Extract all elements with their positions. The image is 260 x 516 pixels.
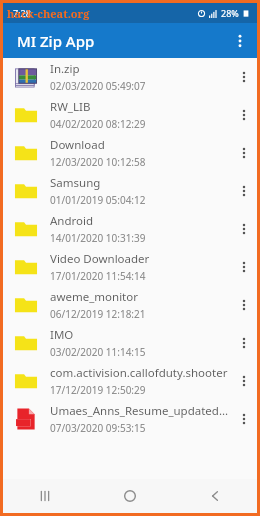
staticText: 03/02/2020 11:14:15: [50, 345, 146, 359]
staticText: 04/02/2020 08:12:29: [50, 117, 146, 131]
button[interactable]: IMO: [3, 324, 257, 362]
staticText: 12/03/2020 10:12:58: [50, 155, 146, 169]
button[interactable]: Item options: [231, 248, 257, 286]
button[interactable]: RW_LIB: [3, 96, 257, 134]
button[interactable]: aweme_monitor: [3, 286, 257, 324]
staticText: In.zip: [50, 61, 80, 77]
button[interactable]: Item options: [231, 134, 257, 172]
button[interactable]: Download: [3, 134, 257, 172]
button[interactable]: Umaes_Anns_Resume_updated.pdf: [3, 400, 257, 438]
staticText: 14/01/2020 10:31:39: [50, 231, 146, 245]
staticText: hack-cheat.org: [7, 6, 90, 21]
button[interactable]: Item options: [231, 286, 257, 324]
staticText: Android: [50, 213, 94, 229]
staticText: 07/03/2020 09:53:15: [50, 421, 146, 435]
staticText: com.activision.callofduty.shooter: [50, 365, 228, 381]
staticText: 17/12/2019 12:50:29: [50, 383, 146, 397]
button[interactable]: Item options: [231, 172, 257, 210]
button[interactable]: Samsung: [3, 172, 257, 210]
staticText: IMO: [50, 327, 74, 343]
button[interactable]: Android: [3, 210, 257, 248]
button[interactable]: More options: [222, 23, 257, 58]
staticText: Samsung: [50, 175, 101, 191]
staticText: 01/01/2019 05:04:12: [50, 193, 146, 207]
staticText: Video Downloader: [50, 251, 150, 267]
button[interactable]: com.activision.callofduty.shooter: [3, 362, 257, 400]
staticText: 06/12/2019 12:18:21: [50, 307, 146, 321]
button[interactable]: Item options: [231, 400, 257, 438]
button[interactable]: Home: [87, 479, 172, 513]
button[interactable]: In.zip: [3, 58, 257, 96]
button[interactable]: Item options: [231, 210, 257, 248]
button[interactable]: Video Downloader: [3, 248, 257, 286]
staticText: RW_LIB: [50, 99, 91, 115]
staticText: 02/03/2020 05:49:07: [50, 79, 146, 93]
button[interactable]: Item options: [231, 362, 257, 400]
button[interactable]: Item options: [231, 324, 257, 362]
staticText: aweme_monitor: [50, 289, 138, 305]
button[interactable]: Recents: [3, 479, 87, 513]
staticText: Umaes_Anns_Resume_updated.pdf: [50, 403, 231, 419]
staticText: MI Zip App: [17, 31, 95, 51]
staticText: 28%: [221, 7, 239, 19]
button[interactable]: MI Zip App: [3, 23, 257, 58]
staticText: 17/01/2020 11:54:14: [50, 269, 146, 283]
button[interactable]: Item options: [231, 96, 257, 134]
staticText: Download: [50, 137, 105, 153]
staticText: 7:28: [13, 7, 31, 19]
button[interactable]: Back: [172, 479, 257, 513]
button[interactable]: Item options: [231, 58, 257, 96]
